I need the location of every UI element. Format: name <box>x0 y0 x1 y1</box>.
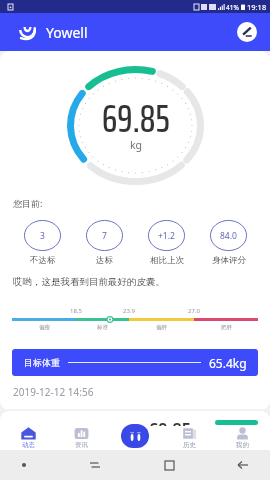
staticText: 27.0 <box>188 307 200 315</box>
staticText: 身体评分 <box>212 255 246 266</box>
staticText: 偏瘦 <box>39 324 50 331</box>
staticText: 我的 <box>236 441 249 449</box>
staticText: 84.0 <box>220 230 237 242</box>
button[interactable]: 目标体重 <box>24 349 247 376</box>
button[interactable]: 我的 <box>227 426 257 450</box>
staticText: Yowell <box>46 23 88 42</box>
staticText: 2019-12-12 14:56 <box>13 385 94 399</box>
staticText: kg <box>130 138 143 152</box>
staticText: 偏胖 <box>156 324 167 331</box>
staticText: 哎哟，这是我看到目前最好的皮囊。 <box>13 276 165 288</box>
staticText: +1.2 <box>158 230 175 242</box>
staticText: 您目前: <box>13 197 43 209</box>
staticText: 目标体重 <box>24 357 60 368</box>
staticText: 历史 <box>183 441 196 449</box>
staticText: 达标 <box>96 255 113 266</box>
staticText: 41% <box>226 3 239 12</box>
staticText: 相比上次 <box>150 255 184 266</box>
staticText: 69.85 <box>102 88 170 149</box>
staticText: 23.9 <box>123 307 135 315</box>
staticText: 19:18 <box>247 2 267 12</box>
button[interactable]: Measure <box>121 424 149 448</box>
staticText: 资讯 <box>75 441 88 449</box>
button[interactable]: Edit <box>237 22 257 42</box>
staticText: 肥胖 <box>221 324 232 331</box>
staticText: 3 <box>40 230 45 242</box>
button[interactable]: 动态 <box>13 426 43 450</box>
staticText: 18.5 <box>70 307 82 315</box>
staticText: 7 <box>102 230 107 242</box>
staticText: 65.4kg <box>209 355 247 371</box>
staticText: 69.85 <box>149 413 191 451</box>
button[interactable]: 资讯 <box>66 426 96 450</box>
staticText: 动态 <box>22 441 35 449</box>
button[interactable]: 历史 <box>174 426 204 450</box>
staticText: 不达标 <box>30 255 56 266</box>
staticText: 标准 <box>97 324 108 331</box>
